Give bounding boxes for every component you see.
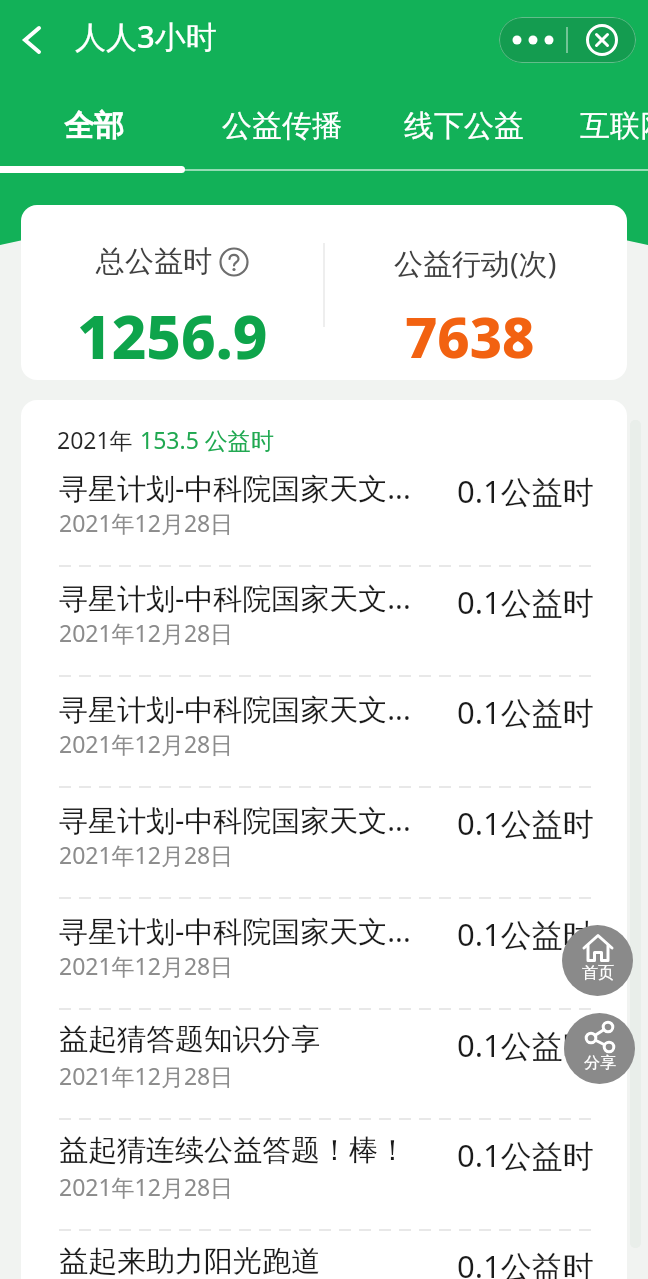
staticText: 益起猜连续公益答题！棒！ (59, 1132, 407, 1169)
staticText: 2021年12月28日 (59, 617, 234, 648)
staticText: 2021年12月28日 (59, 1171, 234, 1202)
staticText: 公益传播 (222, 107, 342, 145)
button[interactable] (0, 468, 648, 571)
staticText: 公益行动(次) (394, 243, 557, 283)
button[interactable]: 公益传播 (222, 100, 342, 152)
button[interactable]: 互联网公益 (580, 100, 648, 152)
staticText: 0.1公益时 (457, 691, 594, 733)
staticText: 0.1公益时 (457, 802, 594, 844)
staticText: 互联网公益 (580, 107, 648, 145)
staticText: 寻星计划-中科院国家天文... (59, 689, 411, 729)
staticText: 首页 (582, 963, 614, 983)
staticText: 寻星计划-中科院国家天文... (59, 911, 411, 951)
button[interactable]: 分享 (564, 1013, 635, 1084)
staticText: 寻星计划-中科院国家天文... (59, 468, 411, 508)
button[interactable] (499, 17, 566, 63)
staticText: 2021年 (57, 424, 133, 455)
staticText: 寻星计划-中科院国家天文... (59, 578, 411, 618)
button[interactable]: 总公益时 (21, 205, 324, 380)
button[interactable] (0, 578, 648, 681)
staticText: 7638 (405, 298, 535, 374)
staticText: 线下公益 (404, 107, 524, 145)
staticText: 2021年12月28日 (59, 839, 234, 870)
button[interactable] (0, 1132, 648, 1235)
staticText: 益起来助力阳光跑道 (59, 1243, 320, 1279)
button[interactable]: 公益行动(次) (324, 205, 627, 380)
staticText: 分享 (584, 1053, 616, 1073)
button[interactable]: 全部 (64, 100, 124, 152)
staticText: 益起猜答题知识分享 (59, 1021, 320, 1058)
staticText: 2021年12月28日 (59, 728, 234, 759)
staticText: 全部 (64, 107, 124, 145)
staticText: 0.1公益时 (457, 1024, 594, 1066)
staticText: 0.1公益时 (457, 1245, 594, 1279)
button[interactable] (0, 689, 648, 792)
staticText: 0.1公益时 (457, 913, 594, 955)
staticText: 0.1公益时 (457, 1134, 594, 1176)
staticText: 寻星计划-中科院国家天文... (59, 800, 411, 840)
button[interactable]: 首页 (562, 925, 633, 996)
staticText: 2021年12月28日 (59, 507, 234, 538)
button[interactable] (14, 22, 50, 58)
staticText: 2021年12月28日 (59, 950, 234, 981)
button[interactable] (0, 1021, 648, 1124)
button[interactable] (0, 800, 648, 903)
staticText: 总公益时 (96, 243, 212, 280)
staticText: 0.1公益时 (457, 470, 594, 512)
staticText: 人人3小时 (75, 15, 217, 57)
staticText: 2021年12月28日 (59, 1060, 234, 1091)
button[interactable]: 线下公益 (404, 100, 524, 152)
button[interactable] (0, 911, 648, 1014)
staticText: 1256.9 (77, 295, 268, 377)
staticText: 0.1公益时 (457, 581, 594, 623)
button[interactable] (0, 1243, 648, 1279)
staticText: 153.5 公益时 (140, 424, 274, 455)
button[interactable] (568, 17, 636, 63)
